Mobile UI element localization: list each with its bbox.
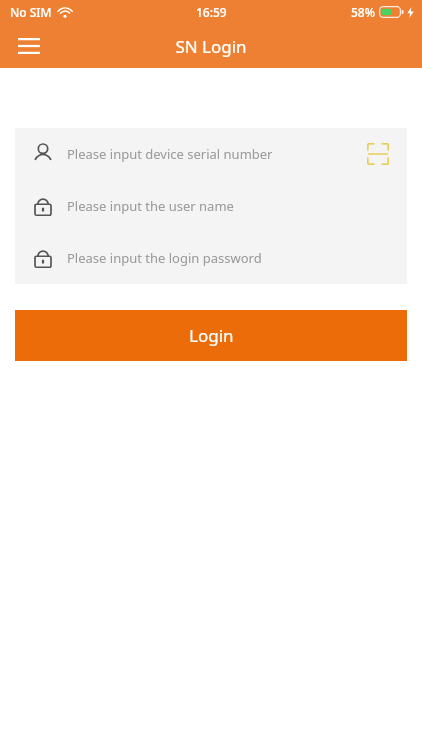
staticText: No SIM <box>10 4 52 20</box>
button[interactable]: Please input the login password <box>15 232 407 284</box>
staticText: SN Login <box>175 35 247 58</box>
button[interactable]: Please input the user name <box>15 180 407 232</box>
staticText: 58% <box>351 4 375 20</box>
button[interactable]: Scan QR code <box>363 139 393 169</box>
staticText: Please input the user name <box>67 197 393 215</box>
button[interactable]: Please input device serial number <box>15 128 407 180</box>
staticText: Please input the login password <box>67 249 393 267</box>
staticText: 16:59 <box>196 4 227 20</box>
staticText: Please input device serial number <box>67 145 363 163</box>
button[interactable]: Login <box>15 310 407 361</box>
button[interactable]: Menu <box>10 27 48 65</box>
staticText: Login <box>189 324 234 347</box>
